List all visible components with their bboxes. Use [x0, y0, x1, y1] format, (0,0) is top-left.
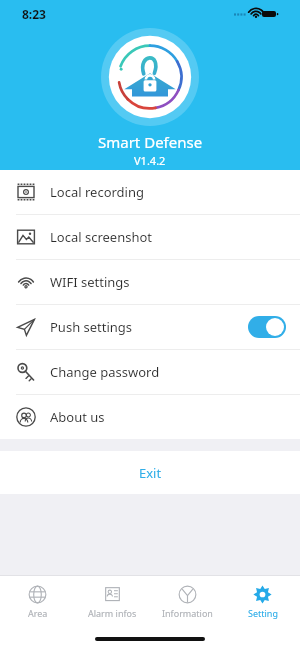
- button[interactable]: Push settings toggle: [248, 316, 286, 338]
- button[interactable]: Alarm infos: [75, 576, 150, 628]
- button[interactable]: Area: [0, 576, 75, 628]
- staticText: Local recording: [50, 183, 144, 201]
- staticText: Area: [28, 607, 48, 619]
- staticText: Information: [162, 607, 213, 619]
- staticText: Push settings: [50, 318, 133, 336]
- staticText: V1.4.2: [134, 153, 166, 168]
- button[interactable]: About us: [0, 395, 300, 439]
- staticText: Local screenshot: [50, 228, 153, 246]
- staticText: Exit: [139, 464, 162, 482]
- button[interactable]: Setting: [225, 576, 300, 628]
- button[interactable]: Information: [150, 576, 225, 628]
- staticText: Smart Defense: [98, 132, 203, 152]
- staticText: 8:23: [22, 6, 46, 22]
- staticText: WIFI settings: [50, 273, 130, 291]
- button[interactable]: Local recording: [0, 170, 300, 215]
- staticText: About us: [50, 408, 105, 426]
- staticText: Alarm infos: [88, 607, 137, 619]
- button[interactable]: Change password: [0, 350, 300, 395]
- button[interactable]: WIFI settings: [0, 260, 300, 305]
- button[interactable]: Push settings: [0, 305, 300, 350]
- staticText: Change password: [50, 363, 160, 381]
- button[interactable]: Local screenshot: [0, 215, 300, 260]
- button[interactable]: Exit: [0, 451, 300, 494]
- staticText: Setting: [248, 607, 278, 619]
